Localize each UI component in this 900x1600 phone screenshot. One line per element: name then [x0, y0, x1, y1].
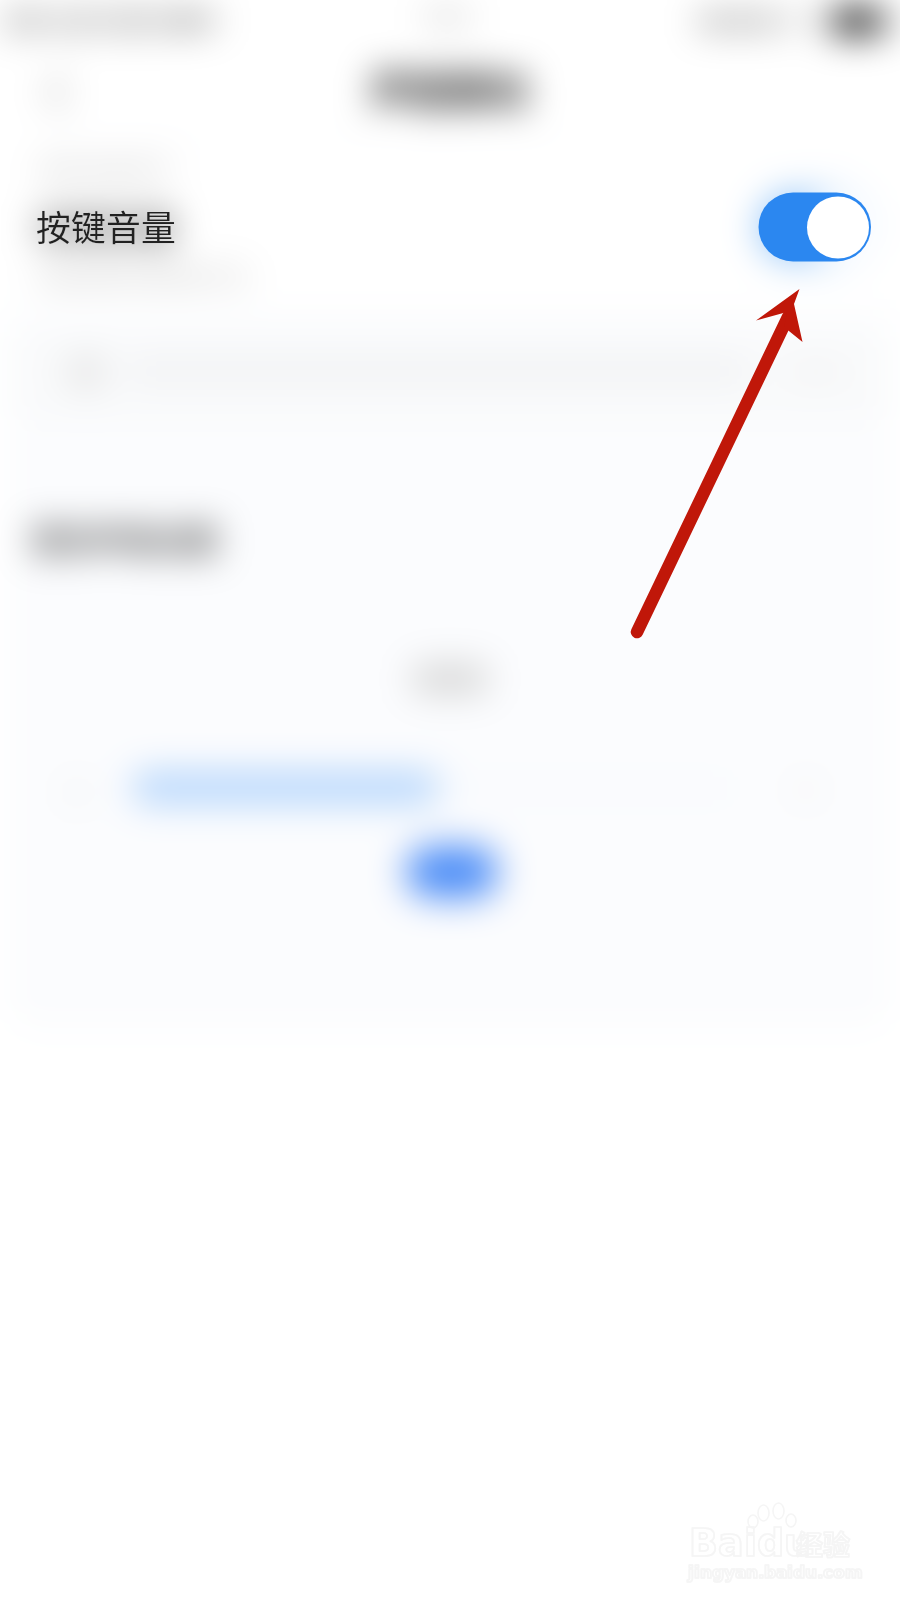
button[interactable]: 按键音量 Key volume, switch on [0, 158, 900, 304]
button[interactable]: 按键音量开关 Key volume toggle, on [750, 184, 880, 270]
button[interactable]: 音量滑块 Volume slider [0, 748, 900, 832]
button[interactable]: 声音设置项 Sound setting item [0, 330, 900, 422]
